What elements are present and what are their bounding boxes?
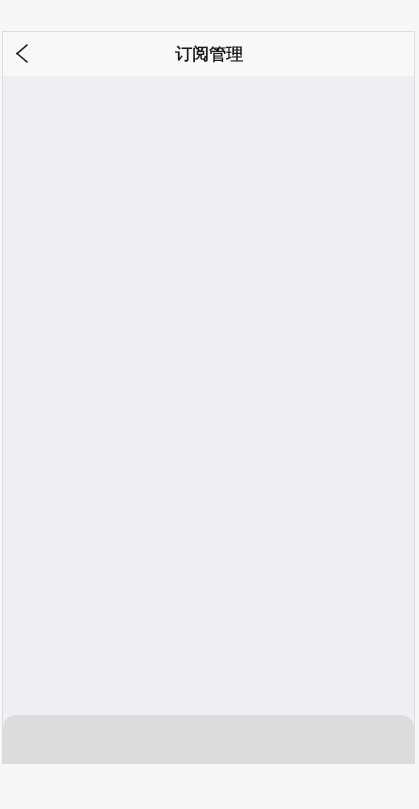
button[interactable]: Back bbox=[3, 32, 41, 76]
staticText: 订阅管理 bbox=[175, 44, 243, 65]
